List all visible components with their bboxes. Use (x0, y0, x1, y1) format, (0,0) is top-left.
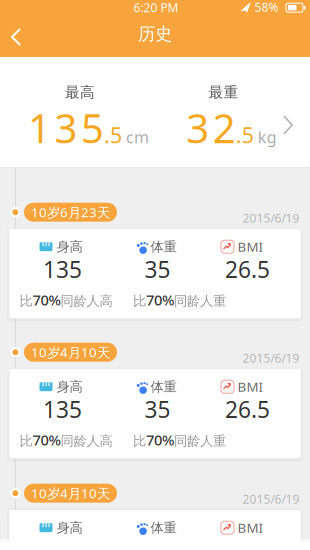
staticText: .5 (236, 121, 254, 149)
staticText: 身高 (56, 238, 82, 255)
staticText: 同龄人高 (60, 293, 112, 309)
staticText: 70% (146, 430, 174, 449)
staticText: 70% (32, 430, 60, 449)
staticText: BMI (237, 519, 263, 536)
button[interactable]: 成长记录 (9, 510, 301, 550)
staticText: kg (254, 126, 277, 148)
button[interactable]: 最高最重 (0, 57, 310, 167)
button[interactable]: 返回 (0, 18, 32, 56)
staticText: 2015/6/19 (242, 350, 299, 366)
staticText: 最重 (208, 83, 238, 101)
staticText: 2015/6/19 (242, 491, 299, 507)
staticText: 体重 (150, 378, 176, 395)
staticText: 比 (133, 433, 146, 449)
staticText: 10岁4月10天 (31, 484, 110, 502)
staticText: 同龄人重 (174, 293, 226, 309)
staticText: 2015/6/19 (242, 210, 299, 226)
staticText: 10岁6月23天 (31, 203, 110, 221)
button[interactable]: 10岁4月10天 (24, 484, 117, 503)
staticText: 135 (43, 254, 82, 284)
staticText: 26.5 (225, 254, 270, 284)
staticText: 同龄人重 (174, 433, 226, 449)
staticText: 历史 (138, 23, 172, 45)
button[interactable]: 10岁6月23天 (24, 203, 117, 222)
staticText: 26.5 (225, 394, 270, 424)
staticText: 6:20 PM (133, 0, 178, 15)
button[interactable]: 成长记录 (9, 229, 301, 319)
staticText: .5 (104, 121, 122, 149)
staticText: 1 (28, 101, 51, 154)
staticText: 体重 (150, 238, 176, 255)
staticText: 135 (43, 394, 82, 424)
staticText: 2 (213, 101, 236, 154)
staticText: 比 (133, 293, 146, 309)
staticText: 3 (186, 101, 209, 154)
staticText: 身高 (56, 378, 82, 395)
staticText: 5 (81, 101, 104, 154)
staticText: 比 (19, 433, 32, 449)
staticText: 比 (19, 293, 32, 309)
staticText: 身高 (56, 519, 82, 536)
staticText: 同龄人高 (60, 433, 112, 449)
staticText: 体重 (150, 519, 176, 536)
staticText: 10岁4月10天 (31, 343, 110, 361)
staticText: 70% (32, 290, 60, 309)
staticText: 58% (254, 0, 278, 15)
staticText: 最高 (65, 83, 95, 101)
button[interactable]: 10岁4月10天 (24, 343, 117, 362)
button[interactable]: 成长记录 (9, 369, 301, 459)
staticText: 70% (146, 290, 174, 309)
staticText: 35 (144, 394, 170, 424)
staticText: 35 (144, 254, 170, 284)
staticText: BMI (237, 378, 263, 395)
staticText: BMI (237, 238, 263, 255)
staticText: cm (122, 126, 149, 148)
staticText: 3 (54, 101, 77, 154)
